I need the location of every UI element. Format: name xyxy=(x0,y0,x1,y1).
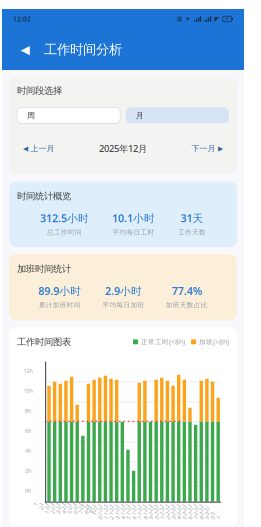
staticText: 10h xyxy=(23,387,32,394)
staticText: 89.9小时 xyxy=(38,284,81,298)
staticText: ◀ xyxy=(20,43,29,56)
staticText: 12/20 xyxy=(146,497,151,525)
button[interactable]: 月 xyxy=(126,107,229,123)
staticText: 2025年12月 xyxy=(99,142,147,155)
staticText: 工作时间图表 xyxy=(17,336,71,348)
staticText: 上一月 xyxy=(30,144,54,153)
staticText: 12/9 xyxy=(84,497,89,518)
staticText: 12/11 xyxy=(95,497,100,525)
staticText: 时间统计概览 xyxy=(17,190,71,202)
staticText: 12/8 xyxy=(79,497,84,518)
staticText: 77.4% xyxy=(172,284,202,298)
staticText: 12/31 xyxy=(208,497,213,525)
staticText: 正常工时(<8h) xyxy=(141,337,185,346)
staticText: 12/26 xyxy=(180,497,185,525)
button[interactable]: 下一月 xyxy=(185,141,229,155)
button[interactable]: Back xyxy=(15,36,35,62)
staticText: ◀ xyxy=(23,145,28,152)
staticText: 12/6 xyxy=(67,497,72,518)
staticText: 10.1小时 xyxy=(112,211,155,225)
staticText: 下一月 xyxy=(191,144,215,153)
staticText: 12/25 xyxy=(174,497,179,525)
staticText: 2.9小时 xyxy=(105,284,142,298)
staticText: 工作时间分析 xyxy=(44,41,122,58)
staticText: 12/3 xyxy=(50,497,55,518)
staticText: 97 xyxy=(225,16,229,22)
staticText: 12/27 xyxy=(185,497,190,525)
staticText: 31天 xyxy=(180,211,203,225)
staticText: 12/15 xyxy=(118,497,123,525)
staticText: 12:02 xyxy=(13,15,31,23)
staticText: 总工作时间 xyxy=(47,228,82,236)
staticText: ▶ xyxy=(218,145,223,152)
staticText: 平均每日工时 xyxy=(112,228,154,236)
staticText: 加班时间统计 xyxy=(17,263,71,275)
staticText: 12/28 xyxy=(191,497,196,525)
staticText: 6h xyxy=(25,427,31,434)
staticText: 12/13 xyxy=(107,497,112,525)
staticText: 4h xyxy=(25,447,31,454)
staticText: 12/4 xyxy=(56,497,61,518)
staticText: 累计加班时间 xyxy=(39,301,81,309)
staticText: 12/14 xyxy=(112,497,117,525)
staticText: 加班天数占比 xyxy=(166,301,208,309)
staticText: 12/29 xyxy=(196,497,201,525)
staticText: 12/19 xyxy=(140,497,145,525)
staticText: 加班(>8h) xyxy=(199,337,229,346)
staticText: 0h xyxy=(25,487,31,494)
staticText: 12/30 xyxy=(202,497,207,525)
staticText: 12/18 xyxy=(135,497,140,525)
staticText: 周 xyxy=(27,111,35,120)
staticText: ✦ xyxy=(185,15,191,23)
staticText: 2h xyxy=(25,467,31,474)
staticText: 12/23 xyxy=(163,497,168,525)
staticText: ◤ xyxy=(214,15,219,23)
staticText: 12/21 xyxy=(152,497,157,525)
button[interactable]: 周 xyxy=(17,107,120,123)
staticText: 12/17 xyxy=(129,497,134,525)
staticText: 312.5小时 xyxy=(40,211,89,225)
staticText: 月 xyxy=(136,111,144,120)
staticText: 12/12 xyxy=(101,497,106,525)
staticText: 8h xyxy=(25,407,31,414)
staticText: 平均每日加班 xyxy=(102,301,144,309)
staticText: 12/24 xyxy=(168,497,173,525)
staticText: 12/1 xyxy=(39,497,44,518)
staticText: 12h xyxy=(23,367,32,374)
staticText: 12/16 xyxy=(123,497,128,525)
staticText: 工作天数 xyxy=(178,228,206,236)
staticText: 12/5 xyxy=(62,497,67,518)
staticText: 12/22 xyxy=(157,497,162,525)
staticText: 时间段选择 xyxy=(17,85,62,96)
staticText: 12/10 xyxy=(90,497,95,525)
button[interactable]: ◀ xyxy=(17,141,60,155)
staticText: 12/7 xyxy=(73,497,78,518)
staticText: 12/2 xyxy=(45,497,50,518)
